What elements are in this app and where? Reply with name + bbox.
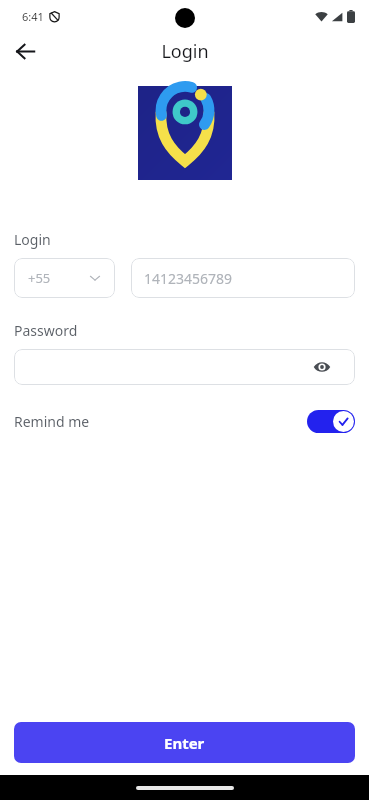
staticText: Login	[14, 230, 51, 249]
staticText: Password	[14, 321, 78, 340]
staticText: Remind me	[14, 412, 90, 431]
staticText: 14123456789	[144, 269, 233, 288]
button[interactable]: Back	[6, 33, 44, 70]
button[interactable]: Show password	[14, 349, 355, 385]
button[interactable]: +55	[14, 258, 115, 298]
button[interactable]: 14123456789	[131, 258, 355, 298]
button[interactable]: Show password	[311, 356, 333, 378]
button[interactable]: Enter	[14, 722, 355, 763]
button[interactable]: Remind me	[14, 406, 355, 436]
other: Remind me toggle	[307, 410, 355, 433]
staticText: +55	[28, 269, 51, 287]
staticText: 6:41	[22, 9, 44, 24]
staticText: Login	[161, 39, 209, 64]
staticText: Enter	[164, 733, 205, 753]
